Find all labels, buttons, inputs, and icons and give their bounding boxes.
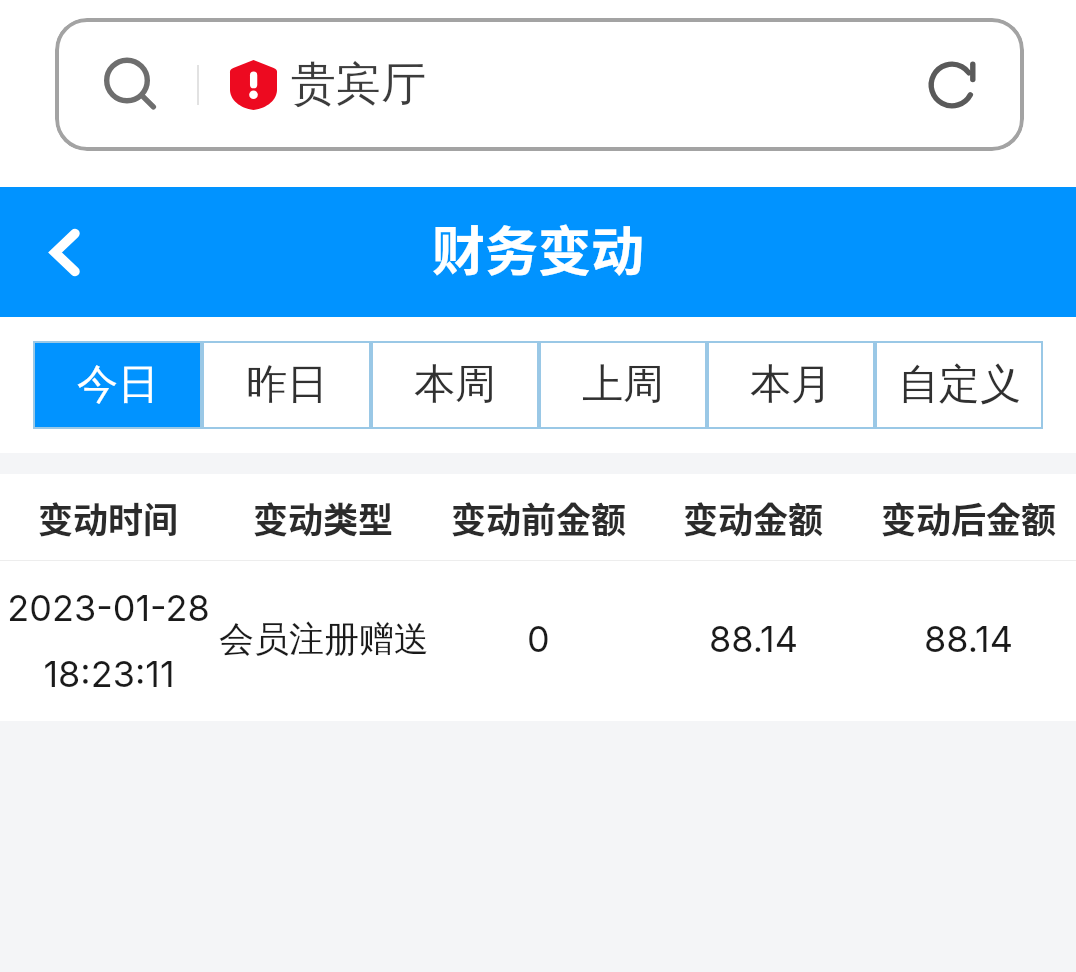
staticText: 本周 xyxy=(414,359,496,411)
staticText: 变动后金额 xyxy=(881,492,1057,543)
button[interactable]: 今日 xyxy=(33,341,202,429)
staticText: 变动类型 xyxy=(253,492,394,543)
button[interactable]: 上周 xyxy=(539,341,707,429)
button[interactable]: 本月 xyxy=(707,341,875,429)
staticText: 18:23:11 xyxy=(43,652,175,696)
other: Refresh xyxy=(922,55,982,115)
staticText: 88.14 xyxy=(924,617,1013,661)
staticText: 上周 xyxy=(582,359,664,411)
button[interactable]: Search xyxy=(55,18,1024,151)
staticText: 今日 xyxy=(77,359,159,411)
other: Search xyxy=(103,59,155,111)
staticText: 变动时间 xyxy=(38,492,179,543)
staticText: 财务变动 xyxy=(432,210,644,287)
button[interactable]: 昨日 xyxy=(202,341,371,429)
staticText: 变动前金额 xyxy=(451,492,627,543)
staticText: 88.14 xyxy=(709,617,798,661)
staticText: 变动金额 xyxy=(683,492,824,543)
staticText: 本月 xyxy=(750,359,832,411)
button[interactable]: 自定义 xyxy=(875,341,1043,429)
staticText: 2023-01-28 xyxy=(7,586,210,630)
staticText: 昨日 xyxy=(246,359,328,411)
button[interactable]: 2023-01-28 xyxy=(0,561,1076,721)
staticText: 贵宾厅 xyxy=(291,56,426,113)
staticText: 自定义 xyxy=(898,359,1021,411)
staticText: 会员注册赠送 xyxy=(219,617,429,661)
button[interactable]: 本周 xyxy=(371,341,539,429)
button[interactable]: Back xyxy=(30,217,100,287)
staticText: 0 xyxy=(527,617,550,661)
